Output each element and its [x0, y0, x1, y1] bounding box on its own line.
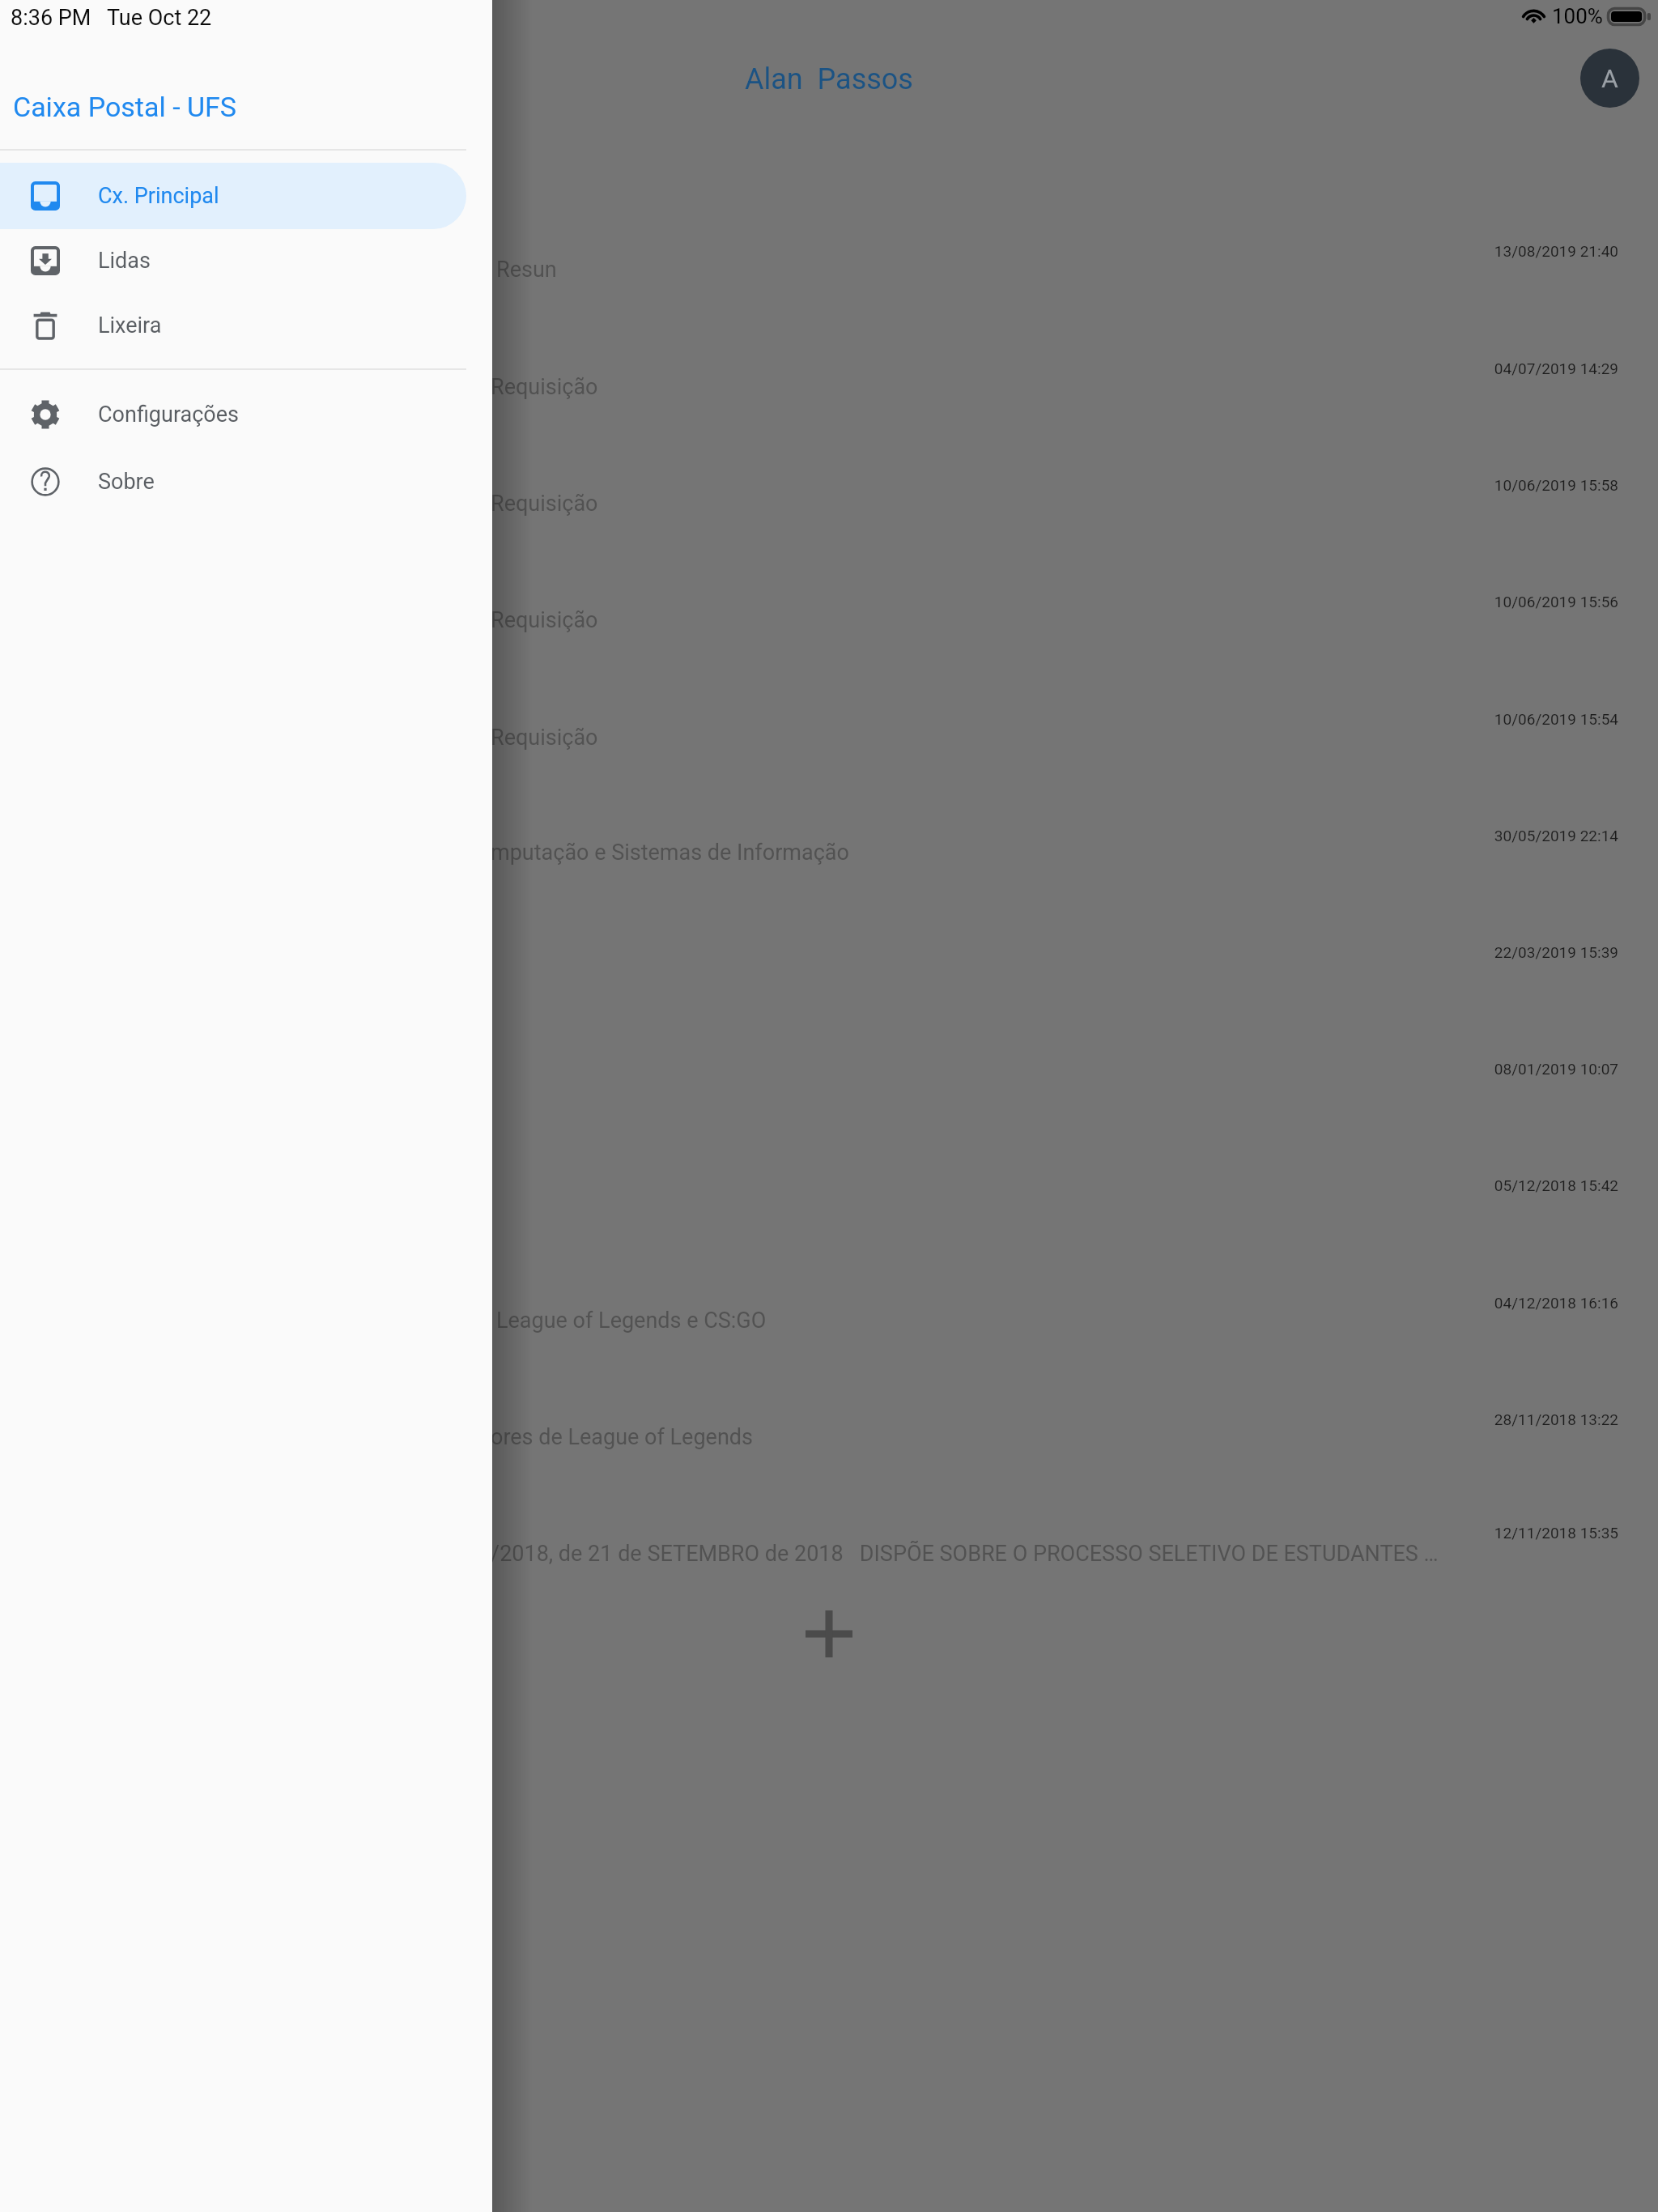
button[interactable]: Account [1580, 49, 1639, 108]
staticText: Cx. Principal [98, 183, 219, 209]
button[interactable] [492, 673, 1658, 789]
staticText: 05/12/2018 15:42 [1376, 1176, 1618, 1194]
button[interactable]: Lidas [0, 228, 466, 294]
staticText: mputação e Sistemas de Informação [491, 840, 1658, 866]
button[interactable] [492, 439, 1658, 555]
staticText: Requisição [491, 374, 1658, 400]
button[interactable] [492, 905, 1658, 1022]
staticText: Requisição [491, 607, 1658, 633]
staticText: A [1601, 63, 1618, 94]
button[interactable] [492, 1372, 1658, 1489]
staticText: 10/06/2019 15:56 [1376, 593, 1618, 610]
button[interactable]: Configurações [0, 381, 466, 448]
button[interactable] [492, 1489, 1658, 1606]
button[interactable] [492, 205, 1658, 321]
button[interactable] [492, 322, 1658, 439]
staticText: 04/07/2019 14:29 [1376, 359, 1618, 377]
button[interactable] [492, 1256, 1658, 1372]
staticText: Caixa Postal - UFS [13, 91, 237, 123]
button[interactable]: Close navigation drawer [492, 0, 1658, 2212]
staticText: 22/03/2019 15:39 [1376, 943, 1618, 961]
staticText: 13/08/2019 21:40 [1376, 242, 1618, 260]
button[interactable]: Sobre [0, 449, 466, 515]
staticText: ores de League of Legends [491, 1424, 1658, 1450]
staticText: Configurações [98, 402, 239, 428]
staticText: Alan Passos [745, 62, 913, 96]
button[interactable]: Compose new message [780, 1585, 878, 1682]
staticText: 100% [1552, 4, 1603, 28]
staticText: Requisição [491, 491, 1658, 517]
staticText: 10/06/2019 15:58 [1376, 476, 1618, 494]
staticText: /2018, de 21 de SETEMBRO de 2018 DISPÕE … [491, 1541, 1658, 1567]
button[interactable]: Alan Passos [691, 50, 967, 108]
staticText: Requisição [491, 725, 1658, 751]
staticText: Resun [496, 257, 1658, 283]
staticText: 04/12/2018 16:16 [1376, 1294, 1618, 1312]
button[interactable]: Lixeira [0, 292, 466, 359]
staticText: Lidas [98, 248, 151, 274]
staticText: Lixeira [98, 313, 162, 338]
button[interactable] [492, 788, 1658, 904]
staticText: 12/11/2018 15:35 [1376, 1524, 1618, 1542]
staticText: 30/05/2019 22:14 [1376, 827, 1618, 844]
staticText: 28/11/2018 13:22 [1376, 1410, 1618, 1428]
staticText: 10/06/2019 15:54 [1376, 710, 1618, 728]
staticText: League of Legends e CS:GO [496, 1308, 1658, 1334]
button[interactable] [492, 1022, 1658, 1138]
button[interactable] [492, 555, 1658, 672]
staticText: 08/01/2019 10:07 [1376, 1060, 1618, 1078]
staticText: 8:36 PM Tue Oct 22 [11, 5, 212, 31]
staticText: Sobre [98, 469, 155, 495]
button[interactable]: Cx. Principal [0, 163, 466, 229]
button[interactable] [492, 1138, 1658, 1255]
